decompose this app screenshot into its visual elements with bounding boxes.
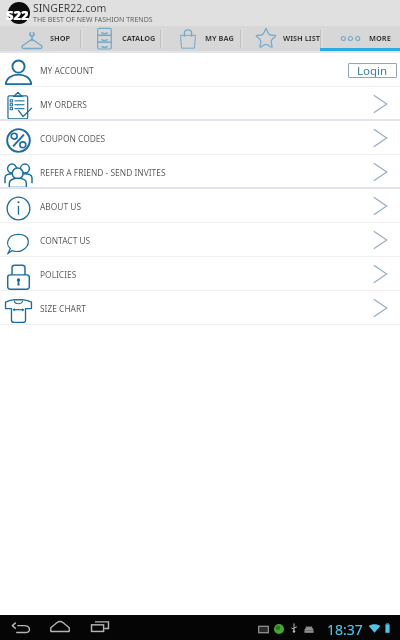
button[interactable]: COUPON CODES [0,121,400,155]
button[interactable]: WISH LIST [240,26,320,51]
staticText: REFER A FRIEND - SEND INVITES [40,167,166,178]
staticText: POLICIES [40,269,77,280]
other: MY ORDERS [372,93,390,115]
staticText: THE BEST OF NEW FASHION TRENDS [33,15,153,25]
button[interactable]: Back [12,622,31,634]
button[interactable]: MY ACCOUNT [0,53,400,87]
staticText: SHOP [50,33,71,43]
button[interactable]: REFER A FRIEND - SEND INVITES [0,155,400,189]
button[interactable]: SHOP [0,26,80,51]
staticText: Login [357,63,388,78]
other: SIZE CHART [372,297,390,319]
staticText: 18:37 [327,620,363,639]
staticText: MY ACCOUNT [40,65,94,76]
staticText: CATALOG [122,33,156,43]
staticText: S22 [6,6,29,24]
button[interactable]: CATALOG [80,26,160,51]
staticText: ABOUT US [40,201,82,212]
other: COUPON CODES [372,127,390,149]
button[interactable]: MORE [320,26,400,51]
staticText: SIZE CHART [40,303,86,314]
button[interactable]: Home [50,621,70,632]
other: CONTACT US [372,229,390,251]
button[interactable]: MY BAG [160,26,240,51]
other: POLICIES [372,263,390,285]
button[interactable]: MY ORDERS [0,87,400,121]
button[interactable]: POLICIES [0,257,400,291]
staticText: COUPON CODES [40,133,106,144]
staticText: MY ORDERS [40,99,87,110]
staticText: MY BAG [205,33,234,43]
button[interactable]: SIZE CHART [0,291,400,325]
staticText: SINGER22.com [33,1,107,15]
staticText: WISH LIST [283,33,320,43]
staticText: CONTACT US [40,235,91,246]
other: ABOUT US [372,195,390,217]
button[interactable]: Login [348,63,397,78]
button[interactable]: ABOUT US [0,189,400,223]
other: REFER A FRIEND - SEND INVITES [372,161,390,183]
button[interactable]: Recents [91,621,109,632]
staticText: MORE [369,33,391,43]
button[interactable]: CONTACT US [0,223,400,257]
